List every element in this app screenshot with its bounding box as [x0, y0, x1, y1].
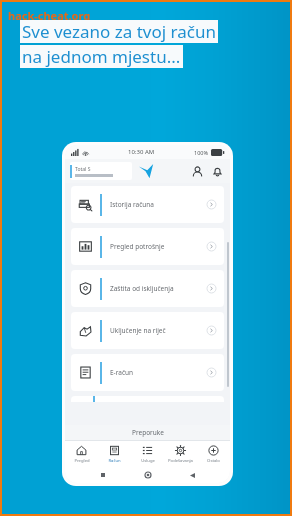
- button[interactable]: Podešavanja: [164, 441, 197, 467]
- staticText: Račun: [108, 458, 121, 464]
- button[interactable]: Pregled potrošnje: [71, 228, 224, 265]
- button[interactable]: Račun: [98, 441, 131, 467]
- staticText: Istorija računa: [110, 200, 207, 209]
- staticText: hack-cheat.org: [8, 8, 91, 23]
- staticText: Podešavanja: [168, 458, 193, 464]
- staticText: Total S: [75, 166, 91, 173]
- staticText: Ostalo: [207, 458, 220, 464]
- staticText: Uključenje na riječ: [110, 326, 207, 335]
- staticText: Pregled potrošnje: [110, 242, 207, 251]
- button[interactable]: Preporuke: [65, 425, 230, 440]
- staticText: Usluge: [141, 458, 155, 464]
- other: Telenor logo: [138, 163, 154, 179]
- staticText: Pregled: [74, 458, 90, 464]
- staticText: Sve vezano za tvoj račun: [22, 20, 216, 43]
- button[interactable]: Back: [186, 469, 198, 481]
- button[interactable]: Uključenje na riječ: [71, 312, 224, 349]
- button[interactable]: E-račun: [71, 354, 224, 391]
- button[interactable]: Pregled: [65, 441, 98, 467]
- button[interactable]: Notifications: [209, 163, 225, 179]
- staticText: E-račun: [110, 368, 207, 377]
- staticText: 10:30 AM: [128, 148, 155, 156]
- staticText: Preporuke: [132, 428, 164, 437]
- staticText: 100%: [194, 149, 209, 156]
- staticText: na jednom mjestu...: [22, 45, 181, 68]
- button[interactable]: Recents: [97, 469, 109, 481]
- button[interactable]: Usluge: [131, 441, 164, 467]
- button[interactable]: Istorija računa: [71, 186, 224, 223]
- button[interactable]: Zaštita od isključenja: [71, 270, 224, 307]
- button[interactable]: Home: [142, 469, 154, 481]
- button[interactable]: Total S: [70, 162, 132, 180]
- staticText: Zaštita od isključenja: [110, 284, 207, 293]
- button[interactable]: Account: [189, 163, 205, 179]
- button[interactable]: Ostalo: [197, 441, 230, 467]
